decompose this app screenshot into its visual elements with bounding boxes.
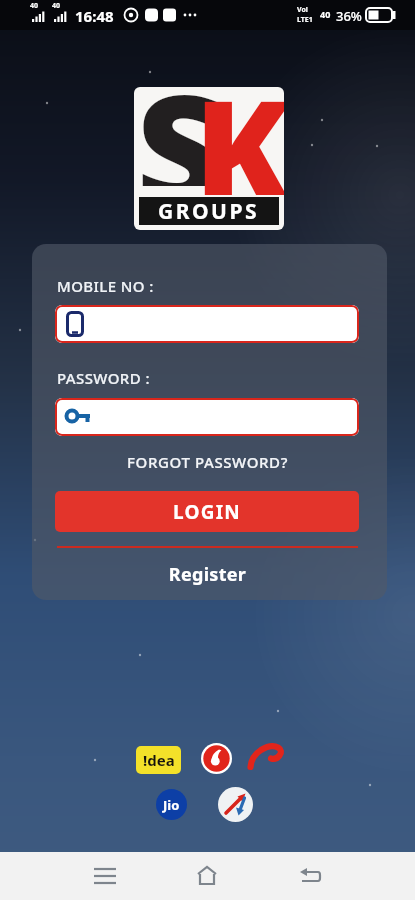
- staticText: LOGIN: [173, 499, 241, 525]
- button[interactable]: Register: [0, 562, 415, 587]
- button[interactable]: FORGOT PASSWORD?: [0, 452, 415, 472]
- staticText: GROUPS: [158, 197, 260, 225]
- button[interactable]: LOGIN: [55, 491, 359, 532]
- staticText: PASSWORD :: [57, 368, 150, 388]
- staticText: Jio: [163, 796, 180, 814]
- button[interactable]: !dea: [136, 746, 181, 774]
- button[interactable]: [94, 865, 116, 887]
- staticText: 40: [52, 1, 61, 11]
- staticText: 40: [320, 8, 331, 20]
- staticText: K: [194, 87, 284, 195]
- button[interactable]: Jio: [156, 789, 187, 820]
- staticText: S: [136, 87, 224, 186]
- button[interactable]: [201, 743, 232, 774]
- button[interactable]: [248, 742, 284, 772]
- staticText: LTE1: [297, 15, 313, 25]
- staticText: MOBILE NO :: [57, 276, 154, 296]
- staticText: !dea: [143, 750, 175, 770]
- button[interactable]: [55, 398, 359, 436]
- button[interactable]: [55, 305, 359, 343]
- button[interactable]: [299, 865, 321, 887]
- staticText: Vol: [297, 5, 308, 15]
- button[interactable]: [218, 787, 253, 822]
- staticText: 40: [30, 1, 39, 11]
- staticText: 36%: [336, 7, 362, 25]
- staticText: 16:48: [75, 6, 114, 26]
- button[interactable]: [196, 865, 218, 887]
